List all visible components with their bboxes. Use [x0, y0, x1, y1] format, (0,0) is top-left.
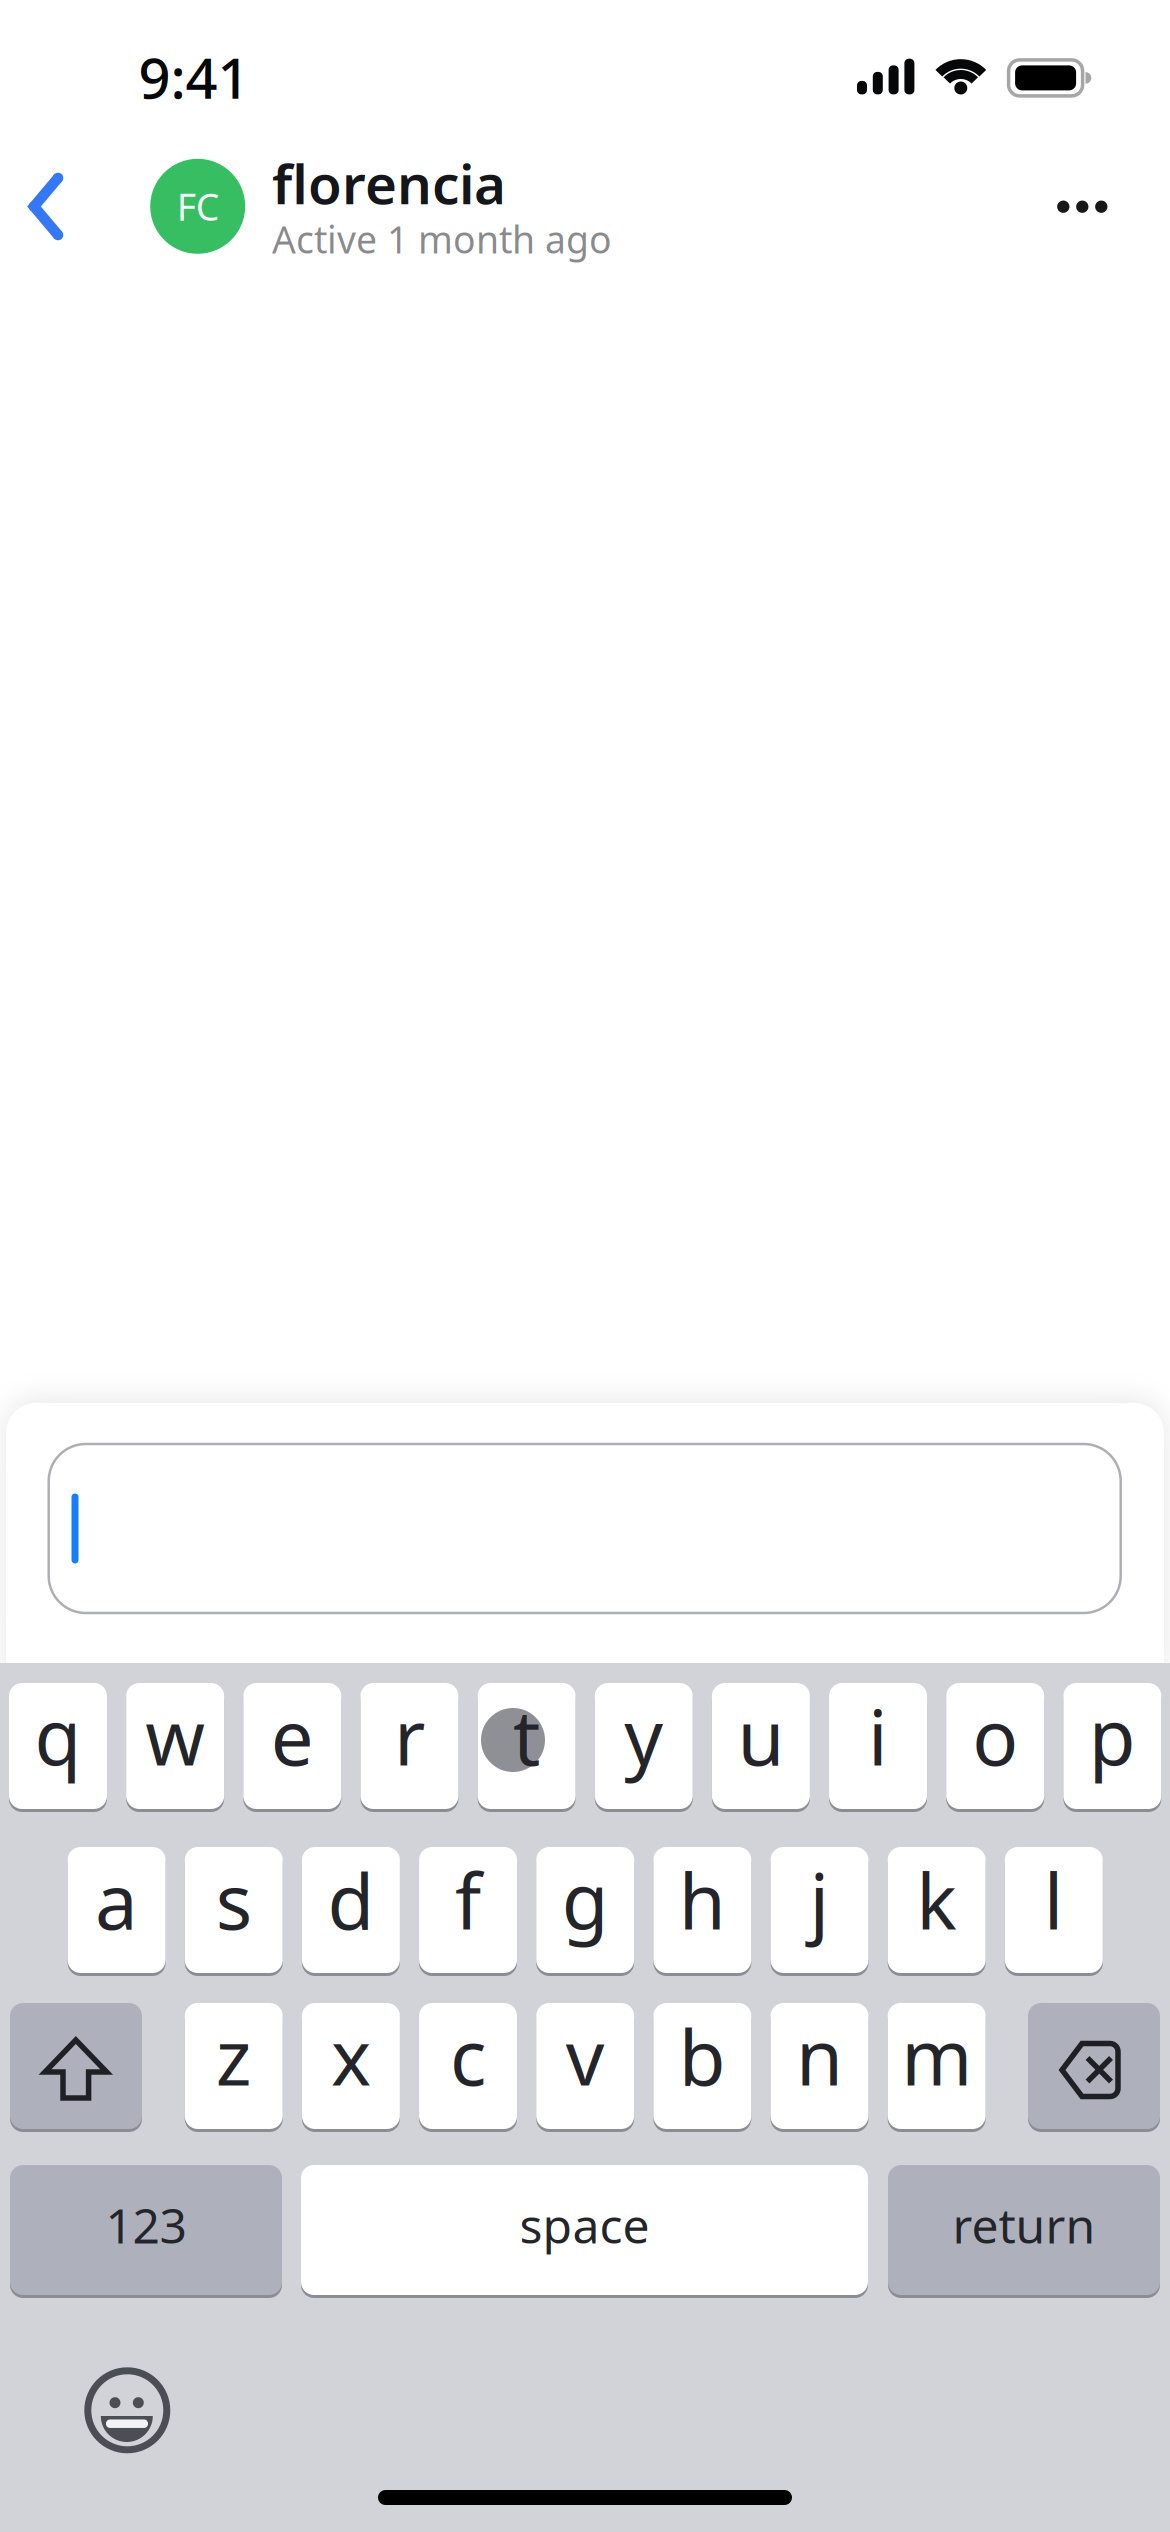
staticText: o [972, 1685, 1018, 1786]
button[interactable]: f [419, 1845, 517, 1974]
staticText: Active 1 month ago [272, 214, 612, 264]
button[interactable]: v [536, 2001, 634, 2130]
button[interactable]: a [68, 1845, 166, 1974]
staticText: g [562, 1849, 609, 1950]
button[interactable]: Back [18, 161, 74, 251]
staticText: q [34, 1685, 81, 1786]
button[interactable]: return [888, 2163, 1160, 2296]
button[interactable]: r [360, 1681, 458, 1810]
staticText: space [519, 2193, 649, 2257]
staticText: k [916, 1849, 957, 1950]
staticText: n [796, 2005, 843, 2106]
button[interactable]: Message [49, 1444, 1121, 1613]
staticText: p [1089, 1685, 1136, 1786]
button[interactable]: g [536, 1845, 634, 1974]
button[interactable]: Delete [1028, 2001, 1160, 2130]
staticText: return [952, 2193, 1095, 2257]
staticText: a [95, 1849, 138, 1950]
staticText: s [216, 1849, 252, 1950]
button[interactable]: y [595, 1681, 693, 1810]
staticText: j [809, 1849, 829, 1950]
staticText: f [455, 1849, 481, 1950]
button[interactable]: l [1005, 1845, 1103, 1974]
button[interactable]: e [243, 1681, 341, 1810]
button[interactable]: More options [1037, 172, 1127, 242]
button[interactable]: Numbers [10, 2163, 282, 2296]
staticText: t [513, 1685, 540, 1786]
button[interactable]: c [419, 2001, 517, 2130]
button[interactable]: o [946, 1681, 1044, 1810]
staticText: x [331, 2005, 371, 2106]
button[interactable]: n [770, 2001, 868, 2130]
staticText: y [624, 1685, 663, 1786]
staticText: 123 [105, 2193, 186, 2257]
staticText: m [901, 2005, 972, 2106]
staticText: z [216, 2005, 252, 2106]
button[interactable]: Shift [10, 2001, 142, 2130]
staticText: FC [177, 181, 220, 231]
staticText: v [566, 2005, 605, 2106]
staticText: e [271, 1685, 314, 1786]
button[interactable]: space [301, 2163, 868, 2296]
button[interactable]: k [888, 1845, 986, 1974]
staticText: h [679, 1849, 726, 1950]
staticText: l [1044, 1849, 1064, 1950]
staticText: florencia [272, 147, 506, 219]
staticText: r [394, 1685, 425, 1786]
button[interactable]: q [9, 1681, 107, 1810]
staticText: b [679, 2005, 726, 2106]
button[interactable]: j [770, 1845, 868, 1974]
staticText: d [327, 1849, 374, 1950]
button[interactable]: FC [150, 151, 610, 261]
button[interactable]: s [185, 1845, 283, 1974]
button[interactable]: w [126, 1681, 224, 1810]
button[interactable]: h [653, 1845, 751, 1974]
button[interactable]: u [712, 1681, 810, 1810]
button[interactable]: x [302, 2001, 400, 2130]
button[interactable]: i [829, 1681, 927, 1810]
staticText: u [737, 1685, 784, 1786]
button[interactable]: Emoji [87, 2370, 167, 2450]
button[interactable]: m [888, 2001, 986, 2130]
staticText: i [868, 1685, 888, 1786]
staticText: w [145, 1685, 205, 1786]
button[interactable]: d [302, 1845, 400, 1974]
staticText: c [450, 2005, 486, 2106]
button[interactable]: z [185, 2001, 283, 2130]
staticText: 9:41 [138, 40, 249, 114]
button[interactable]: p [1063, 1681, 1161, 1810]
button[interactable]: b [653, 2001, 751, 2130]
button[interactable]: t [478, 1681, 576, 1810]
